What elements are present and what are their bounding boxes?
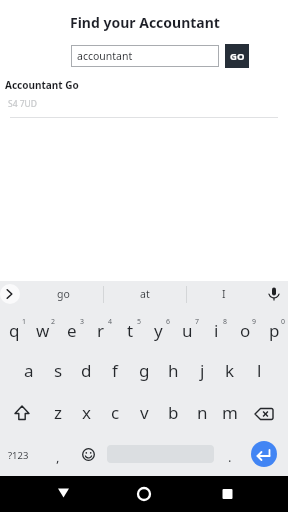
staticText: k <box>225 359 235 382</box>
staticText: 0 <box>281 317 286 327</box>
staticText: Find your Accountant <box>70 13 220 32</box>
staticText: t <box>127 319 134 342</box>
staticText: 5 <box>137 317 142 327</box>
staticText: at <box>140 287 150 301</box>
staticText: I <box>222 287 226 301</box>
staticText: c <box>111 401 120 424</box>
staticText: j <box>200 359 205 382</box>
staticText: s <box>54 359 63 382</box>
staticText: i <box>214 319 219 342</box>
staticText: b <box>168 401 179 424</box>
staticText: p <box>269 319 280 342</box>
staticText: 6 <box>166 317 171 327</box>
staticText: n <box>197 401 208 424</box>
staticText: m <box>222 401 238 424</box>
staticText: 4 <box>108 317 113 327</box>
staticText: u <box>182 319 193 342</box>
staticText: . <box>228 448 232 466</box>
staticText: r <box>97 319 105 342</box>
staticText: d <box>81 359 92 382</box>
staticText: 2 <box>51 317 56 327</box>
staticText: 1 <box>22 317 27 327</box>
staticText: S4 7UD <box>8 98 38 110</box>
staticText: x <box>82 401 91 424</box>
staticText: go <box>57 287 70 301</box>
staticText: a <box>24 359 34 382</box>
staticText: ?123 <box>8 449 29 462</box>
staticText: l <box>257 359 262 382</box>
staticText: v <box>140 401 149 424</box>
staticText: y <box>154 319 163 342</box>
staticText: accountant <box>77 49 133 63</box>
staticText: g <box>139 359 150 382</box>
staticText: q <box>9 319 20 342</box>
staticText: GO <box>230 50 245 63</box>
staticText: h <box>168 359 179 382</box>
staticText: e <box>67 319 77 342</box>
staticText: w <box>36 319 50 342</box>
staticText: , <box>56 448 60 466</box>
staticText: 9 <box>252 317 257 327</box>
staticText: 7 <box>195 317 200 327</box>
staticText: Accountant Go <box>5 78 79 92</box>
staticText: z <box>54 401 62 424</box>
staticText: 8 <box>223 317 228 327</box>
staticText: f <box>112 359 118 382</box>
staticText: 3 <box>80 317 85 327</box>
staticText: o <box>240 319 251 342</box>
